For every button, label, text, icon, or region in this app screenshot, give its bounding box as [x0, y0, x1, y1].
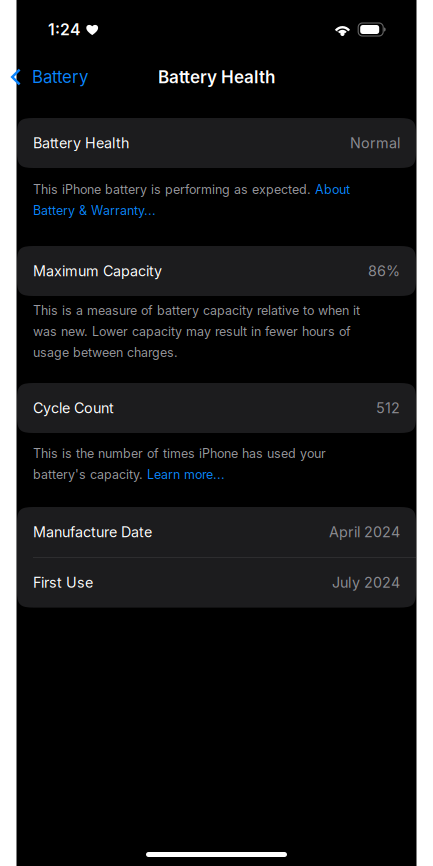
staticText: April 2024 [329, 523, 400, 541]
staticText: Learn more... [147, 467, 225, 482]
staticText: Cycle Count [33, 399, 114, 417]
button[interactable]: First Use [17, 558, 416, 608]
staticText: Normal [350, 134, 400, 152]
staticText: Maximum Capacity [33, 262, 162, 280]
staticText: battery's capacity. [33, 467, 147, 482]
staticText: This is the number of times iPhone has u… [33, 446, 326, 461]
staticText: Battery Health [33, 134, 129, 152]
button[interactable]: Maximum Capacity [17, 246, 416, 296]
staticText: was new. Lower capacity may result in fe… [33, 324, 351, 339]
staticText: 86% [368, 262, 400, 280]
staticText: 1:24 [48, 20, 80, 39]
button[interactable]: Manufacture Date [17, 507, 416, 557]
staticText: July 2024 [332, 574, 400, 591]
staticText: Battery Health [158, 67, 275, 87]
staticText: About [315, 182, 350, 197]
button[interactable]: Battery Health [17, 118, 416, 168]
staticText: Battery & Warranty... [33, 203, 156, 218]
staticText: Manufacture Date [33, 523, 152, 541]
staticText: This is a measure of battery capacity re… [33, 303, 360, 318]
button[interactable]: Battery [0, 59, 98, 95]
staticText: First Use [33, 574, 93, 591]
staticText: This iPhone battery is performing as exp… [33, 182, 315, 197]
staticText: usage between charges. [33, 345, 178, 360]
button[interactable]: Cycle Count [17, 383, 416, 433]
staticText: Battery [32, 67, 88, 87]
staticText: 512 [376, 399, 400, 417]
